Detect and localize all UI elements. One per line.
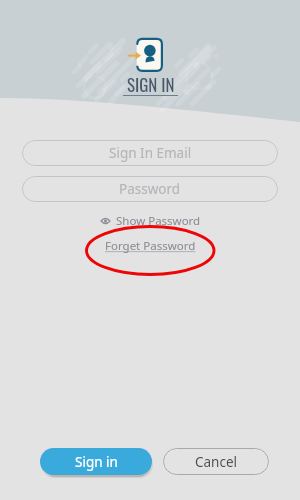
button[interactable]: Sign in xyxy=(40,448,152,475)
button[interactable]: Sign In Email xyxy=(22,140,278,166)
button[interactable]: Cancel xyxy=(163,448,269,475)
staticText: Cancel xyxy=(195,453,238,471)
button[interactable]: Forget Password xyxy=(102,237,199,255)
staticText: Sign in xyxy=(75,453,118,471)
staticText: Show Password xyxy=(116,213,201,229)
staticText: Password xyxy=(119,180,181,198)
staticText: Sign In Email xyxy=(109,144,192,162)
button[interactable]: Password xyxy=(22,176,278,202)
button[interactable]: Show Password xyxy=(98,212,203,230)
staticText: SIGN IN xyxy=(127,72,175,97)
